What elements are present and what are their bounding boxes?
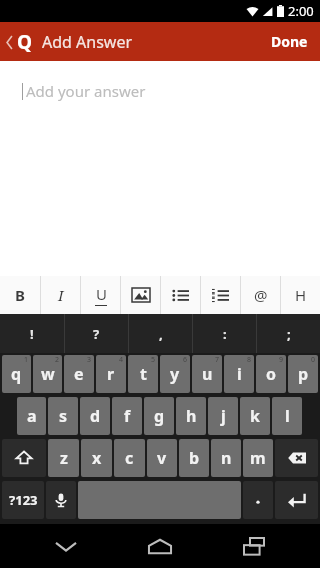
staticText: l [285, 405, 290, 427]
button[interactable]: l [272, 397, 302, 435]
staticText: , [159, 325, 163, 343]
button[interactable]: 6 [160, 355, 190, 393]
staticText: 1 [24, 355, 29, 365]
staticText: 7 [215, 355, 220, 365]
button[interactable]: n [211, 439, 241, 477]
button[interactable]: 7 [192, 355, 222, 393]
staticText: Q [17, 29, 33, 55]
button[interactable]: H [281, 276, 320, 314]
staticText: v [157, 447, 167, 469]
button[interactable]: Done [259, 24, 320, 59]
button[interactable]: m [243, 439, 273, 477]
staticText: 9 [279, 355, 284, 365]
staticText: 6 [183, 355, 188, 365]
staticText: y [170, 363, 180, 385]
button[interactable]: c [114, 439, 145, 477]
button[interactable]: z [48, 439, 79, 477]
staticText: j [221, 405, 226, 427]
staticText: w [41, 363, 55, 385]
staticText: r [107, 363, 115, 385]
staticText: h [186, 405, 197, 427]
button[interactable]: , [129, 314, 192, 353]
staticText: Add Answer [42, 31, 133, 53]
staticText: k [250, 405, 260, 427]
staticText: u [202, 363, 213, 385]
button[interactable]: Backspace [275, 439, 318, 477]
staticText: f [124, 405, 131, 427]
staticText: Done [271, 32, 308, 51]
button[interactable]: OL [201, 276, 240, 314]
button[interactable]: 9 [256, 355, 286, 393]
button[interactable]: AT [241, 276, 280, 314]
staticText: 4 [119, 355, 124, 365]
button[interactable]: j [208, 397, 238, 435]
button[interactable]: Voice input [46, 481, 76, 519]
button[interactable]: Q [0, 29, 141, 55]
staticText: q [11, 363, 22, 385]
button[interactable]: : [193, 314, 256, 353]
staticText: p [298, 363, 309, 385]
staticText: 2:00 [288, 2, 314, 20]
button[interactable]: 8 [224, 355, 254, 393]
button[interactable]: Home [132, 524, 188, 568]
staticText: n [221, 447, 232, 469]
button[interactable]: Hide keyboard [38, 524, 94, 568]
staticText: Add your answer [26, 81, 146, 101]
button[interactable]: ?123 [2, 481, 44, 519]
staticText: x [92, 447, 102, 469]
staticText: o [266, 363, 277, 385]
button[interactable]: ; [257, 314, 320, 353]
button[interactable]: 5 [128, 355, 158, 393]
button[interactable]: Recent apps [226, 524, 282, 568]
staticText: t [140, 363, 147, 385]
staticText: U [96, 284, 107, 304]
button[interactable]: a [17, 397, 46, 435]
button[interactable]: I [41, 276, 80, 314]
staticText: 8 [247, 355, 252, 365]
staticText: 0 [311, 355, 316, 365]
staticText: i [237, 363, 242, 385]
staticText: g [154, 405, 165, 427]
button[interactable]: 2 [33, 355, 62, 393]
staticText: a [27, 405, 37, 427]
staticText: e [74, 363, 84, 385]
button[interactable]: U [81, 276, 120, 314]
button[interactable]: ? [65, 314, 128, 353]
button[interactable]: 3 [64, 355, 94, 393]
button[interactable]: UL [161, 276, 200, 314]
button[interactable]: B [0, 276, 40, 314]
button[interactable]: v [147, 439, 177, 477]
button[interactable]: f [112, 397, 142, 435]
staticText: 2 [55, 355, 60, 365]
staticText: c [125, 447, 134, 469]
button[interactable]: Enter [275, 481, 318, 519]
button[interactable]: 1 [2, 355, 31, 393]
staticText: z [60, 447, 68, 469]
staticText: I [58, 285, 64, 305]
button[interactable]: x [81, 439, 112, 477]
button[interactable]: b [179, 439, 209, 477]
button[interactable]: h [176, 397, 206, 435]
button[interactable]: ! [0, 314, 64, 353]
button[interactable]: d [80, 397, 110, 435]
staticText: s [59, 405, 68, 427]
staticText: ? [93, 325, 100, 343]
button[interactable]: IMG [121, 276, 160, 314]
staticText: H [295, 285, 307, 305]
staticText: d [90, 405, 101, 427]
staticText: @ [254, 285, 268, 305]
button[interactable]: s [48, 397, 78, 435]
button[interactable]: g [144, 397, 174, 435]
staticText: ! [30, 325, 34, 343]
staticText: m [250, 447, 266, 469]
button[interactable]: Period [243, 481, 273, 519]
staticText: 3 [87, 355, 92, 365]
button[interactable]: Shift [2, 439, 46, 477]
button[interactable]: 0 [288, 355, 318, 393]
button[interactable]: 4 [96, 355, 126, 393]
button[interactable]: k [240, 397, 270, 435]
staticText: : [223, 325, 227, 343]
staticText: ; [287, 325, 291, 343]
staticText: ?123 [9, 491, 38, 509]
